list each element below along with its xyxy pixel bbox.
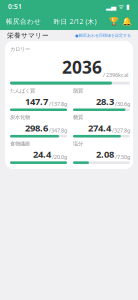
staticText: 炭水化物 xyxy=(10,114,30,121)
staticText: 147.7 xyxy=(25,95,48,107)
button[interactable]: Notifications xyxy=(122,17,132,26)
button[interactable]: 昨日 2/12 (木) xyxy=(53,17,96,26)
staticText: 274.4 xyxy=(88,122,111,134)
button[interactable]: 帳尻合わせ xyxy=(6,17,41,26)
staticText: 298.6 xyxy=(25,122,48,134)
staticText: 塩分 xyxy=(73,140,83,147)
staticText: 栄養サマリー xyxy=(7,31,49,40)
staticText: 糖質 xyxy=(73,114,83,121)
button[interactable]: Awards xyxy=(109,17,119,26)
staticText: ▂▄ ᯤ ▮ xyxy=(106,2,130,11)
staticText: /30.6g xyxy=(115,100,130,107)
staticText: ● 帳尻あわせ目標値を設定する xyxy=(75,33,131,38)
staticText: 24.4 xyxy=(33,148,51,160)
staticText: たんぱく質 xyxy=(10,88,35,94)
staticText: /137.8g xyxy=(49,100,67,107)
staticText: カロリー xyxy=(10,46,30,53)
staticText: 昨日 2/12 (木) xyxy=(53,17,96,26)
staticText: /327.8g xyxy=(112,127,130,134)
staticText: / 2396kcal xyxy=(103,71,128,79)
staticText: /20.0g xyxy=(52,153,67,160)
staticText: /7.50g xyxy=(115,153,130,160)
staticText: 帳尻合わせ xyxy=(6,17,41,26)
staticText: 食物繊維 xyxy=(10,140,30,147)
staticText: 2036 xyxy=(62,56,102,79)
staticText: 🏆 xyxy=(109,17,119,26)
staticText: /347.8g xyxy=(49,127,67,134)
staticText: 🔔 xyxy=(122,17,132,26)
staticText: 0:51 xyxy=(8,2,22,11)
staticText: 脂質 xyxy=(73,88,83,94)
staticText: 2.08 xyxy=(96,148,114,160)
staticText: 28.3 xyxy=(96,95,114,107)
